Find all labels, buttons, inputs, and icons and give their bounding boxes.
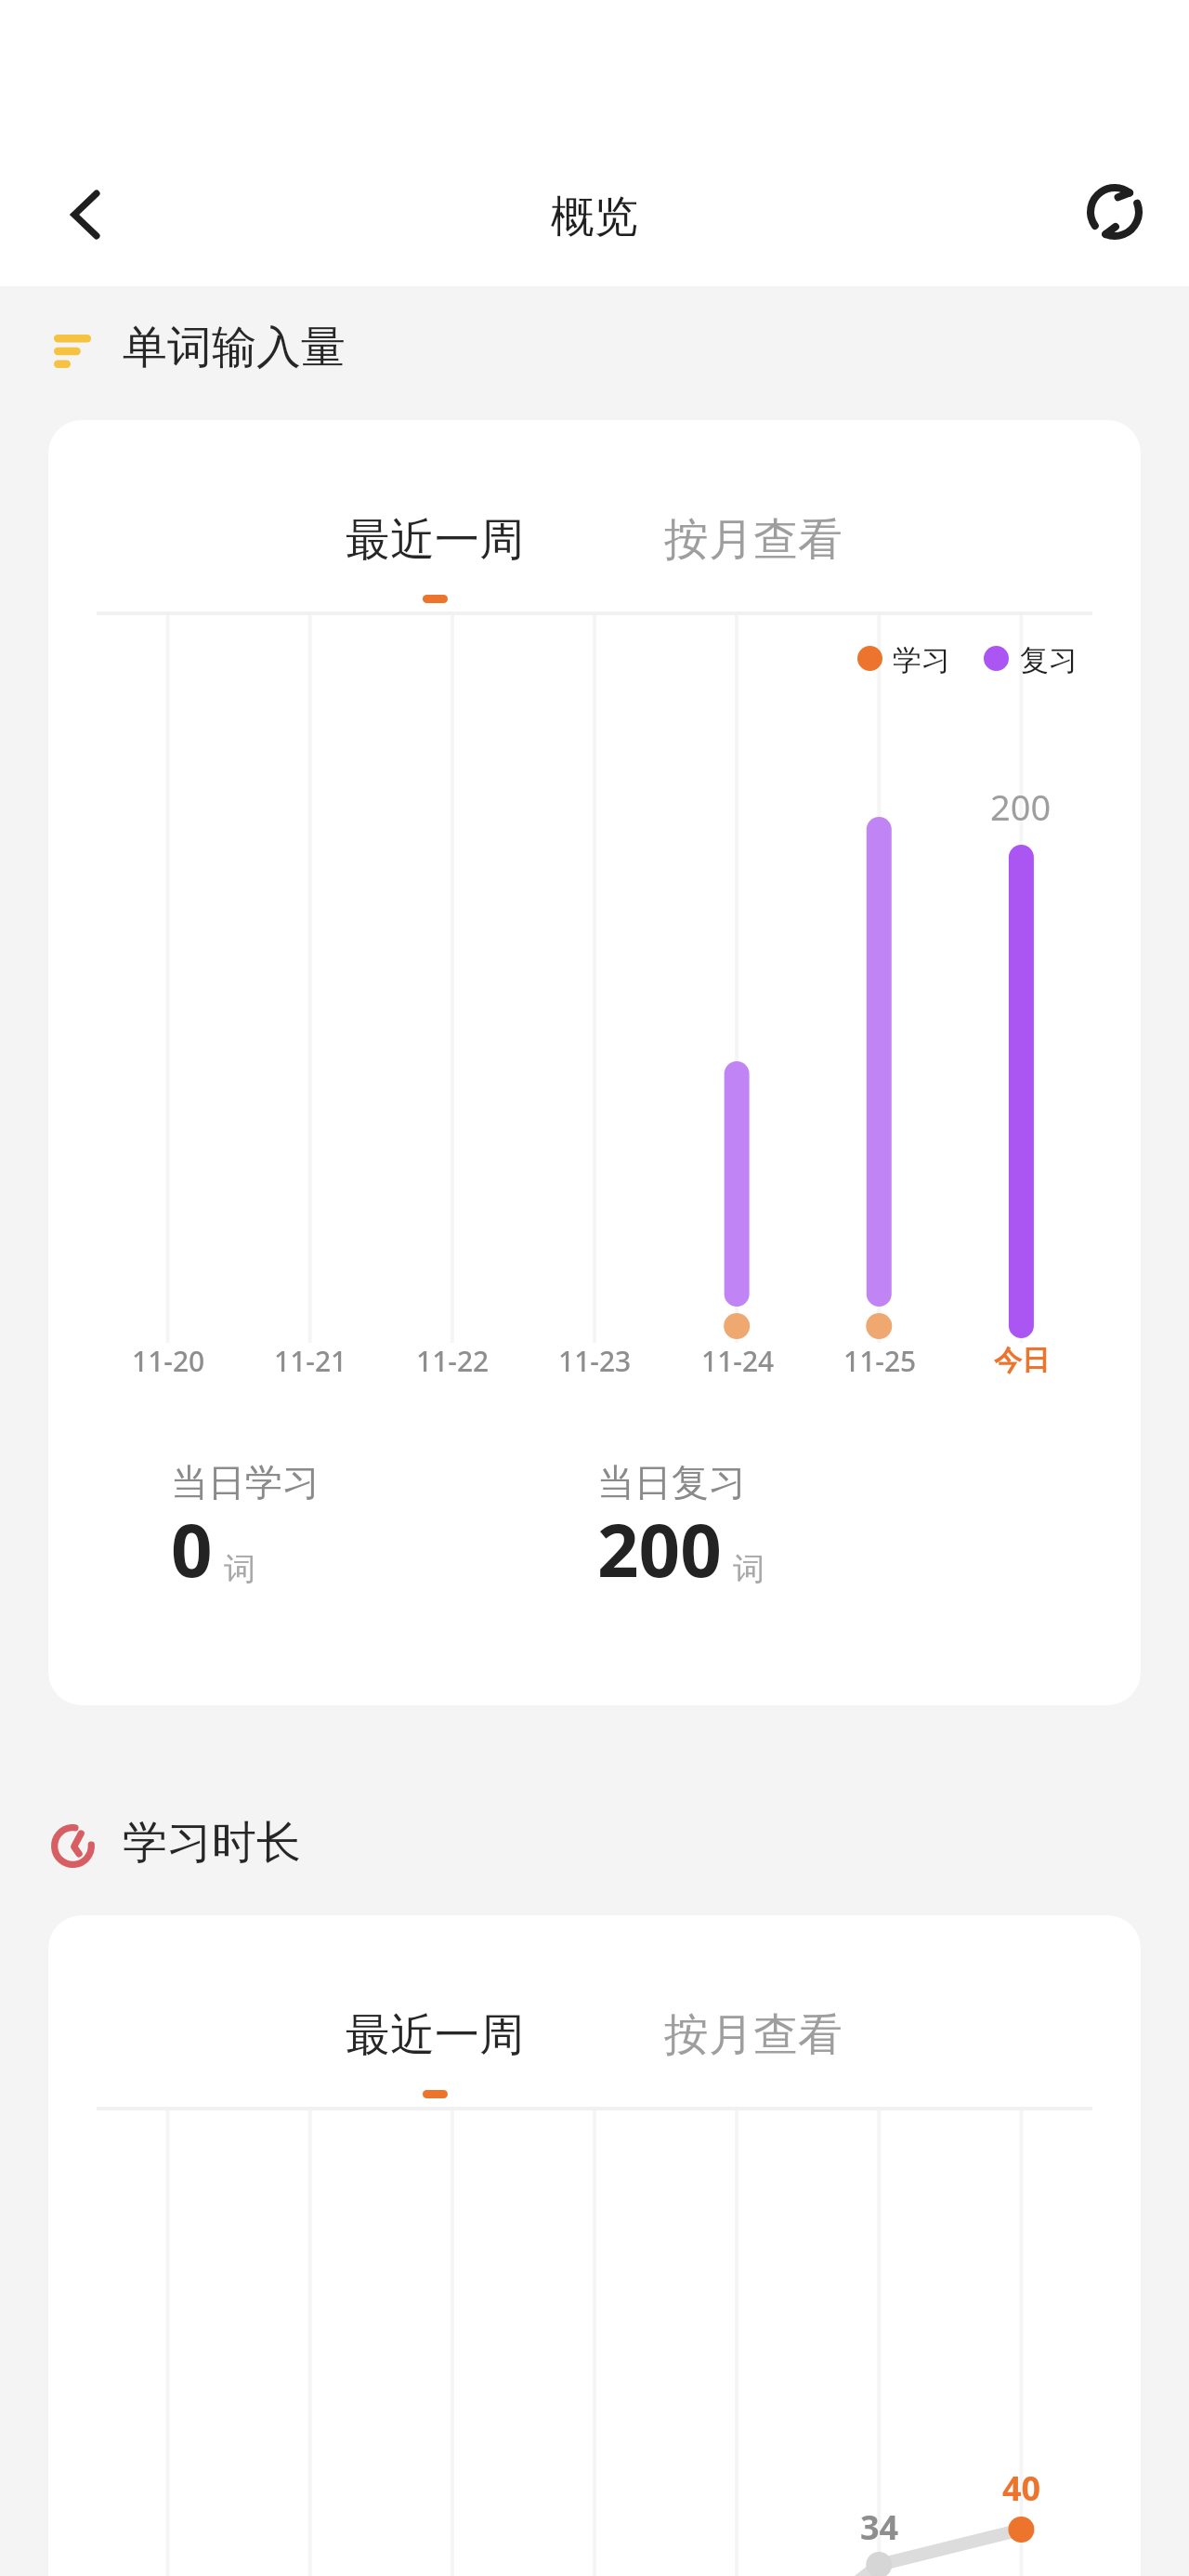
button[interactable]: Back bbox=[48, 177, 123, 252]
staticText: 学习 bbox=[893, 642, 950, 678]
staticText: 按月查看 bbox=[664, 2007, 843, 2063]
staticText: 复习 bbox=[1020, 642, 1078, 678]
button[interactable]: 按月查看 bbox=[621, 490, 885, 616]
staticText: 单词输入量 bbox=[123, 320, 346, 375]
staticText: 概览 bbox=[551, 190, 638, 244]
button[interactable]: Refresh bbox=[1078, 175, 1152, 249]
staticText: 按月查看 bbox=[664, 512, 843, 568]
staticText: 11-24 bbox=[701, 1342, 775, 1380]
staticText: 200 bbox=[597, 1500, 722, 1598]
staticText: 0 bbox=[171, 1500, 213, 1598]
staticText: 当日复习 bbox=[597, 1459, 746, 1505]
staticText: 最近一周 bbox=[346, 512, 524, 568]
staticText: 今日 bbox=[994, 1343, 1050, 1378]
staticText: 200 bbox=[990, 782, 1052, 831]
button[interactable]: 按月查看 bbox=[621, 1985, 885, 2111]
staticText: 11-21 bbox=[274, 1342, 347, 1380]
staticText: 词 bbox=[224, 1549, 255, 1589]
staticText: 词 bbox=[733, 1549, 764, 1589]
staticText: 40 bbox=[1002, 2465, 1041, 2511]
staticText: 当日学习 bbox=[171, 1459, 320, 1505]
staticText: 11-23 bbox=[558, 1342, 632, 1380]
staticText: 最近一周 bbox=[346, 2007, 524, 2063]
staticText: 学习时长 bbox=[123, 1815, 301, 1871]
button[interactable]: 最近一周 bbox=[303, 1985, 567, 2111]
button[interactable]: 最近一周 bbox=[303, 490, 567, 616]
staticText: 11-20 bbox=[132, 1342, 205, 1380]
staticText: 11-25 bbox=[843, 1342, 917, 1380]
staticText: 34 bbox=[860, 2504, 899, 2550]
staticText: 11-22 bbox=[416, 1342, 490, 1380]
